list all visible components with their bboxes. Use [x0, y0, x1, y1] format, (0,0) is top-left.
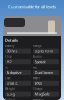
button[interactable]: Colour: [5, 98, 31, 100]
staticText: Customisable for all levels: [8, 4, 56, 9]
button[interactable]: Weight: [5, 87, 31, 96]
button[interactable]: Mic: [33, 66, 59, 75]
button[interactable]: Case: [5, 76, 31, 86]
staticText: H2: [7, 59, 12, 64]
staticText: Warranty: [33, 98, 43, 100]
staticText: Adaptive: [7, 70, 22, 75]
staticText: Details: [5, 37, 18, 43]
button[interactable]: Water: [33, 76, 59, 86]
staticText: Chip: [5, 55, 12, 58]
button[interactable]: Fit: [5, 66, 31, 75]
staticText: Colour: [5, 98, 15, 100]
staticText: Battery: [5, 44, 14, 48]
staticText: IPX4: [35, 81, 42, 86]
staticText: Mic: [33, 66, 37, 69]
staticText: Fit: [5, 66, 8, 69]
staticText: MagSafe: [35, 91, 50, 97]
staticText: Dual beam: [35, 70, 54, 75]
staticText: USB-C: [7, 81, 19, 86]
staticText: Spatial: [35, 59, 46, 64]
staticText: Up to 10 m: [35, 48, 54, 54]
staticText: Range: [33, 44, 42, 48]
button[interactable]: Warranty: [33, 98, 59, 100]
button[interactable]: Battery: [5, 44, 31, 53]
staticText: Water: [33, 76, 40, 80]
staticText: Audio: [33, 55, 42, 58]
staticText: 30 hrs: [7, 48, 18, 54]
staticText: Weight: [5, 87, 15, 91]
staticText: Charge: [33, 87, 43, 91]
button[interactable]: Charge: [33, 87, 59, 96]
button[interactable]: Range: [33, 44, 59, 53]
staticText: 5.3 g: [7, 91, 15, 97]
button[interactable]: Chip: [5, 55, 31, 64]
button[interactable]: Audio: [33, 55, 59, 64]
staticText: Case: [5, 76, 11, 80]
